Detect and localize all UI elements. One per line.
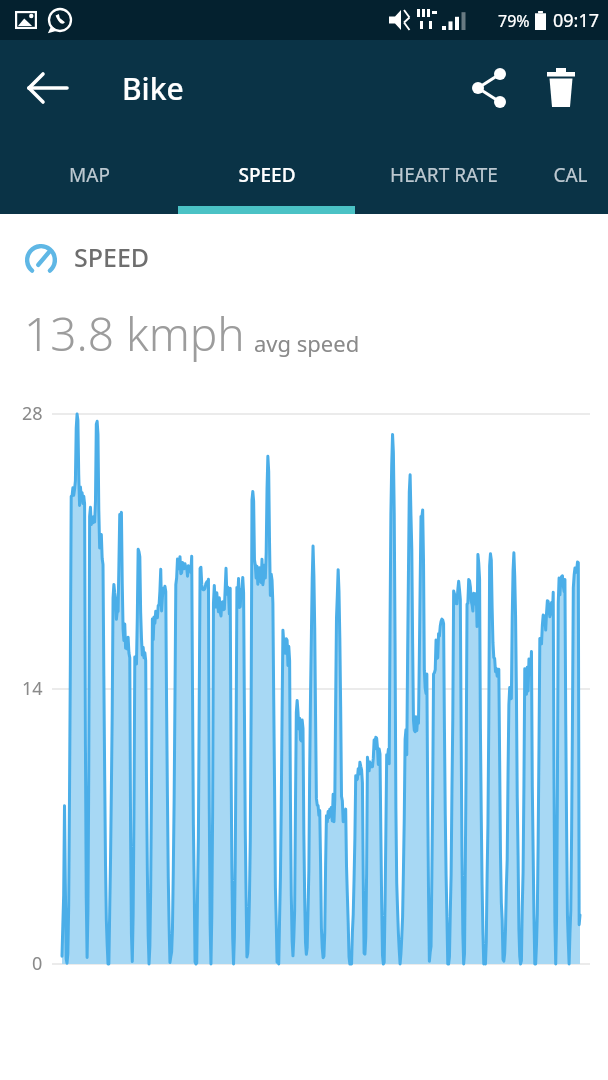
staticText: SPEED (238, 162, 296, 188)
staticText: 28 (22, 401, 43, 426)
staticText: 09:17 (553, 8, 600, 33)
staticText: 14 (22, 676, 43, 701)
button[interactable]: CAL (532, 136, 608, 214)
staticText: Bike (122, 68, 184, 109)
button[interactable]: Delete (532, 59, 590, 117)
staticText: SPEED (74, 240, 150, 274)
staticText: CAL (553, 162, 588, 188)
staticText: 79% (498, 10, 530, 32)
staticText: 0 (32, 951, 43, 976)
button[interactable]: Share (460, 59, 518, 117)
button[interactable]: Back (20, 60, 76, 116)
button[interactable]: HEART RATE (355, 136, 532, 214)
staticText: HEART RATE (390, 162, 498, 188)
staticText: avg speed (254, 328, 360, 358)
button[interactable]: SPEED (178, 136, 355, 214)
staticText: MAP (69, 162, 110, 188)
button[interactable]: MAP (0, 136, 178, 214)
staticText: 13.8 kmph (24, 302, 245, 365)
